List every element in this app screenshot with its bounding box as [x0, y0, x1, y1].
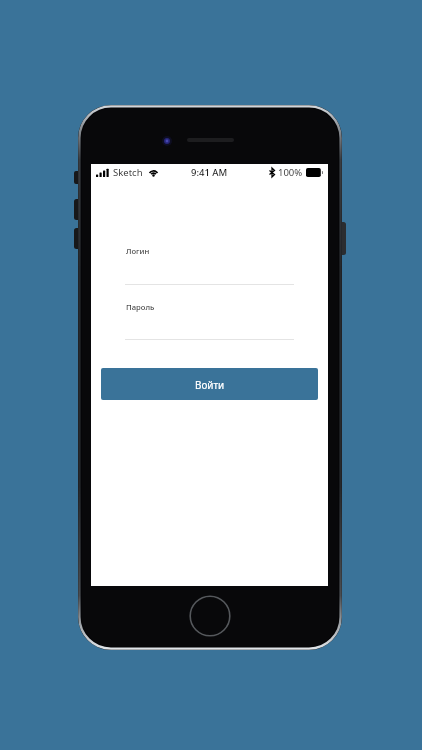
staticText: 9:41 AM: [191, 166, 228, 179]
staticText: Пароль: [126, 302, 155, 312]
staticText: Sketch: [113, 166, 143, 179]
staticText: Логин: [126, 246, 150, 256]
button[interactable]: Войти: [101, 368, 318, 400]
staticText: 100%: [278, 166, 303, 179]
staticText: Войти: [195, 378, 225, 391]
